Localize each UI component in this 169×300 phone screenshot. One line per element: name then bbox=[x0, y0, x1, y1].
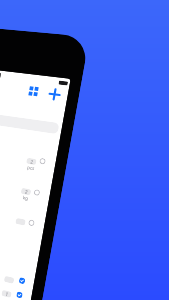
staticText: kg bbox=[22, 194, 29, 201]
staticText: 9:41 bbox=[0, 70, 2, 80]
staticText: pcs bbox=[27, 164, 36, 171]
staticText: 2 bbox=[30, 158, 34, 165]
button[interactable] bbox=[0, 160, 52, 211]
button[interactable] bbox=[0, 129, 58, 181]
staticText: 2 bbox=[24, 188, 28, 195]
button[interactable]: Add item bbox=[43, 82, 66, 107]
button[interactable]: Grid view bbox=[22, 78, 45, 103]
button[interactable] bbox=[0, 265, 33, 300]
button[interactable] bbox=[0, 251, 36, 293]
button[interactable] bbox=[0, 103, 60, 138]
button[interactable] bbox=[0, 189, 47, 242]
staticText: 1 bbox=[5, 291, 9, 297]
